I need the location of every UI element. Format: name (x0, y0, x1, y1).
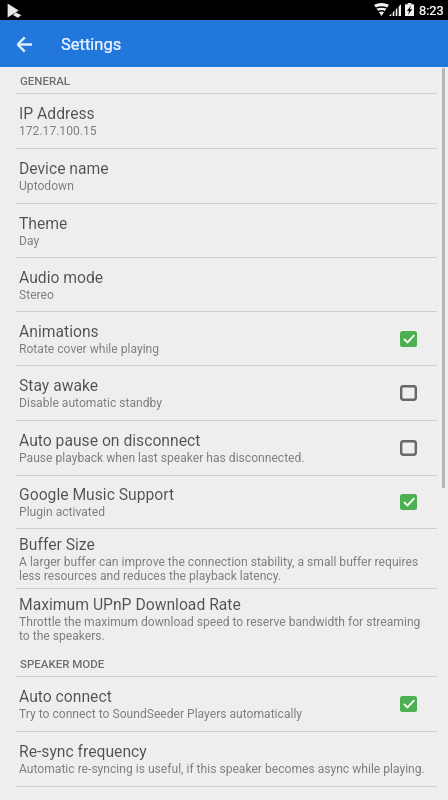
button[interactable]: Re-sync frequency (0, 732, 448, 786)
button[interactable]: Animations (389, 320, 427, 358)
button[interactable]: Auto pause on disconnect (0, 421, 448, 475)
button[interactable]: Auto connect (389, 685, 427, 723)
staticText: Auto pause on disconnect (19, 429, 201, 451)
staticText: IP Address (19, 102, 95, 124)
button[interactable]: IP Address (0, 94, 448, 148)
button[interactable]: Device name (0, 149, 448, 203)
button[interactable]: Google Music Support (389, 483, 427, 521)
staticText: A larger buffer can improve the connecti… (19, 555, 433, 583)
staticText: Maximum UPnP Download Rate (19, 593, 241, 615)
button[interactable]: Auto pause on disconnect (389, 429, 427, 467)
staticText: Device name (19, 157, 109, 179)
staticText: Animations (19, 320, 99, 342)
staticText: Buffer Size (19, 533, 95, 555)
staticText: 172.17.100.15 (19, 124, 97, 138)
staticText: Disable automatic standby (19, 396, 162, 410)
staticText: Plugin activated (19, 505, 105, 519)
button[interactable]: Audio mode (0, 258, 448, 311)
staticText: Pause playback when last speaker has dis… (19, 451, 305, 465)
staticText: Stereo (19, 288, 54, 302)
staticText: Settings (61, 35, 122, 54)
staticText: Stay awake (19, 374, 99, 396)
staticText: Uptodown (19, 179, 74, 193)
button[interactable]: Google Music Support (0, 476, 448, 528)
button[interactable]: Back (4, 24, 44, 64)
staticText: SPEAKER MODE (20, 657, 105, 670)
staticText: Auto connect (19, 685, 112, 707)
staticText: Throttle the maximum download speed to r… (19, 615, 433, 643)
button[interactable]: Buffer Size (0, 529, 448, 588)
staticText: Audio mode (19, 266, 104, 288)
staticText: GENERAL (20, 74, 71, 87)
button[interactable]: Theme (0, 204, 448, 257)
staticText: Rotate cover while playing (19, 342, 160, 356)
button[interactable]: Animations (0, 312, 448, 365)
button[interactable]: Auto connect (0, 677, 448, 731)
staticText: Google Music Support (19, 483, 175, 505)
staticText: 8:23 (419, 3, 444, 18)
staticText: Day (19, 234, 40, 248)
button[interactable]: Maximum UPnP Download Rate (0, 589, 448, 649)
staticText: Re-sync frequency (19, 740, 147, 762)
staticText: Theme (19, 212, 68, 234)
staticText: Try to connect to SoundSeeder Players au… (19, 707, 303, 721)
staticText: Automatic re-syncing is useful, if this … (19, 762, 425, 776)
button[interactable]: Stay awake (0, 366, 448, 420)
button[interactable]: Stay awake (389, 374, 427, 412)
